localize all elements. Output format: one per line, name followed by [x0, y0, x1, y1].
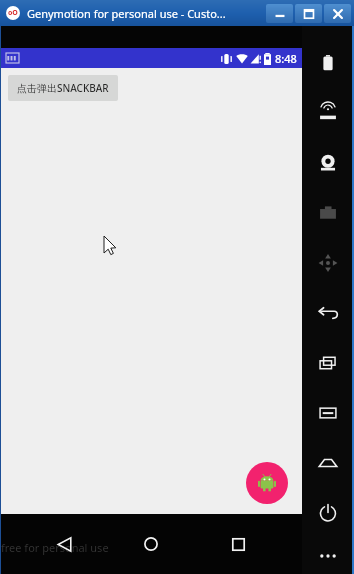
staticText: free for personal use: [1, 540, 109, 555]
button[interactable]: Screen capture: [302, 188, 354, 238]
button[interactable]: GPS: [302, 88, 354, 138]
button[interactable]: Menu: [302, 388, 354, 438]
button[interactable]: Minimize: [266, 4, 293, 23]
button[interactable]: Recent apps: [215, 521, 261, 567]
button[interactable]: Camera: [302, 138, 354, 188]
staticText: oO: [8, 8, 18, 18]
button[interactable]: Back: [302, 288, 354, 338]
button[interactable]: 点击弹出SNACKBAR: [8, 75, 118, 101]
button[interactable]: More: [302, 538, 354, 574]
staticText: Genymotion for personal use - Custo...: [27, 6, 226, 21]
button[interactable]: Accelerometer: [302, 238, 354, 288]
button[interactable]: Back: [41, 521, 87, 567]
button[interactable]: Recents: [302, 338, 354, 388]
button[interactable]: Power: [302, 488, 354, 538]
button[interactable]: Android action: [246, 462, 288, 504]
button[interactable]: Home: [302, 438, 354, 488]
staticText: 点击弹出SNACKBAR: [17, 81, 109, 95]
button[interactable]: Close: [324, 4, 351, 23]
button[interactable]: Maximize: [295, 4, 322, 23]
button[interactable]: Battery: [302, 38, 354, 88]
staticText: 8:48: [275, 51, 297, 66]
button[interactable]: Home: [128, 521, 174, 567]
